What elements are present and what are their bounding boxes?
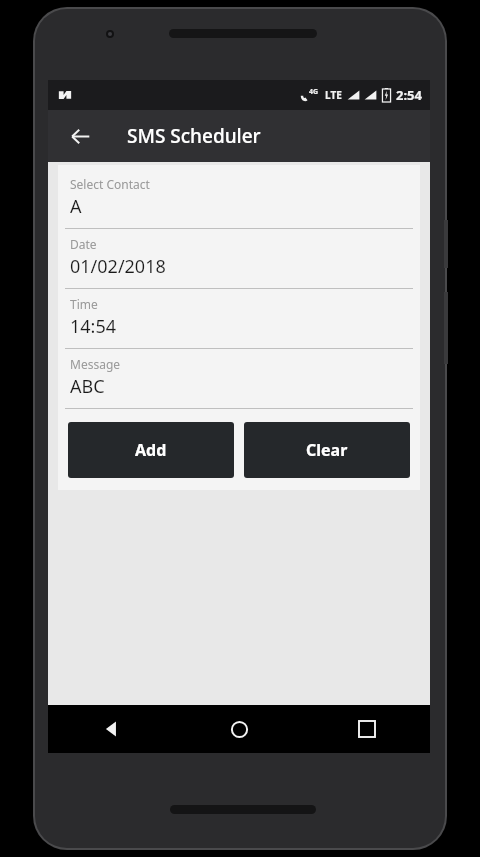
- staticText: 4G: [309, 87, 319, 97]
- staticText: Message: [70, 356, 121, 372]
- button[interactable]: Message: [64, 349, 414, 409]
- button[interactable]: Clear: [244, 422, 410, 478]
- staticText: Add: [135, 439, 167, 461]
- staticText: Select Contact: [70, 176, 150, 192]
- button[interactable]: Back: [48, 705, 176, 753]
- staticText: LTE: [325, 88, 342, 102]
- button[interactable]: Back: [61, 117, 99, 155]
- button[interactable]: Add: [68, 422, 234, 478]
- staticText: ABC: [70, 374, 105, 399]
- staticText: Clear: [306, 439, 348, 461]
- staticText: SMS Scheduler: [127, 123, 261, 149]
- button[interactable]: Recent apps: [303, 705, 430, 753]
- button[interactable]: Time: [64, 289, 414, 349]
- staticText: 14:54: [70, 314, 117, 339]
- staticText: 01/02/2018: [70, 254, 166, 279]
- staticText: Date: [70, 236, 97, 252]
- button[interactable]: Home: [176, 705, 303, 753]
- staticText: Time: [70, 296, 98, 312]
- staticText: A: [70, 194, 82, 219]
- staticText: 2:54: [396, 86, 422, 104]
- button[interactable]: Select Contact: [64, 165, 414, 229]
- button[interactable]: Date: [64, 229, 414, 289]
